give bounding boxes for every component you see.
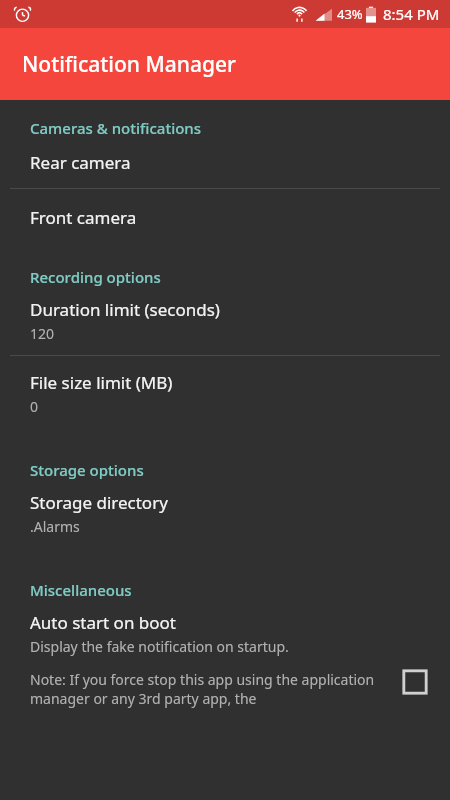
staticText: Display the fake notification on startup…	[30, 637, 289, 656]
staticText: Cameras & notifications	[30, 118, 202, 138]
staticText: Auto start on boot	[30, 611, 176, 634]
staticText: Storage directory	[30, 491, 168, 514]
staticText: Storage options	[30, 460, 144, 480]
staticText: 43%	[337, 5, 363, 23]
button[interactable]: Auto start on boot	[0, 602, 450, 718]
button[interactable]: File size limit (MB)	[0, 356, 450, 428]
staticText: 120	[30, 324, 55, 343]
button[interactable]: Front camera	[0, 189, 450, 243]
staticText: Duration limit (seconds)	[30, 298, 220, 321]
staticText: Rear camera	[30, 151, 131, 174]
button[interactable]: Rear camera	[0, 140, 450, 188]
staticText: 0	[30, 397, 39, 416]
staticText: Note: If you force stop this app using t…	[30, 670, 390, 708]
button[interactable]: Storage directory	[0, 482, 450, 548]
staticText: 8:54 PM	[383, 4, 440, 24]
staticText: Notification Manager	[22, 50, 236, 79]
staticText: File size limit (MB)	[30, 371, 173, 394]
staticText: Recording options	[30, 267, 161, 287]
button[interactable]: Auto start on boot checkbox	[398, 665, 432, 699]
staticText: .Alarms	[30, 517, 80, 536]
staticText: Front camera	[30, 206, 137, 229]
staticText: Miscellaneous	[30, 580, 132, 600]
button[interactable]: Duration limit (seconds)	[0, 289, 450, 355]
